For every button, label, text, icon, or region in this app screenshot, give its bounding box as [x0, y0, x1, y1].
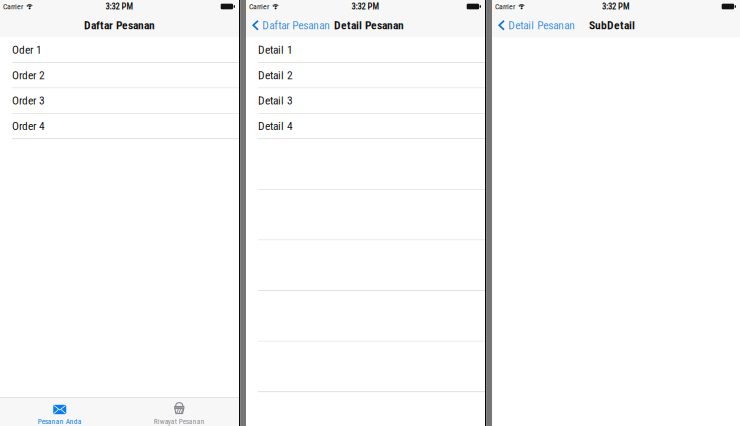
- staticText: Detail Pesanan: [508, 18, 575, 32]
- button[interactable]: Pesanan Anda: [0, 398, 119, 426]
- button[interactable]: Order 4: [0, 114, 239, 139]
- staticText: 3:32 PM: [602, 1, 630, 12]
- staticText: Order 4: [12, 119, 45, 133]
- staticText: Detail 3: [258, 94, 293, 107]
- staticText: Daftar Pesanan: [262, 18, 330, 32]
- staticText: Pesanan Anda: [38, 417, 82, 426]
- staticText: Oder 1: [12, 43, 42, 57]
- staticText: Carrier: [3, 2, 23, 11]
- button[interactable]: Detail Pesanan: [492, 13, 579, 37]
- button[interactable]: Order 3: [0, 88, 239, 114]
- staticText: Detail 2: [258, 69, 293, 82]
- button[interactable]: Detail 3: [246, 88, 485, 114]
- staticText: Carrier: [249, 2, 269, 11]
- staticText: SubDetail: [589, 18, 635, 32]
- button[interactable]: Detail 1: [246, 37, 485, 63]
- button[interactable]: Riwayat Pesanan: [119, 398, 239, 426]
- button[interactable]: Detail 4: [246, 114, 485, 139]
- button[interactable]: Daftar Pesanan: [246, 13, 334, 37]
- staticText: Detail 1: [258, 43, 293, 57]
- staticText: 3:32 PM: [105, 1, 133, 12]
- staticText: 3:32 PM: [351, 1, 379, 12]
- staticText: Carrier: [495, 2, 515, 11]
- button[interactable]: Oder 1: [0, 37, 239, 63]
- button[interactable]: Order 2: [0, 63, 239, 88]
- staticText: Daftar Pesanan: [84, 18, 155, 32]
- staticText: Order 2: [12, 69, 45, 82]
- staticText: Detail 4: [258, 119, 293, 133]
- button[interactable]: Detail 2: [246, 63, 485, 88]
- staticText: Order 3: [12, 94, 45, 107]
- staticText: Detail Pesanan: [334, 18, 404, 32]
- staticText: Riwayat Pesanan: [154, 417, 205, 426]
